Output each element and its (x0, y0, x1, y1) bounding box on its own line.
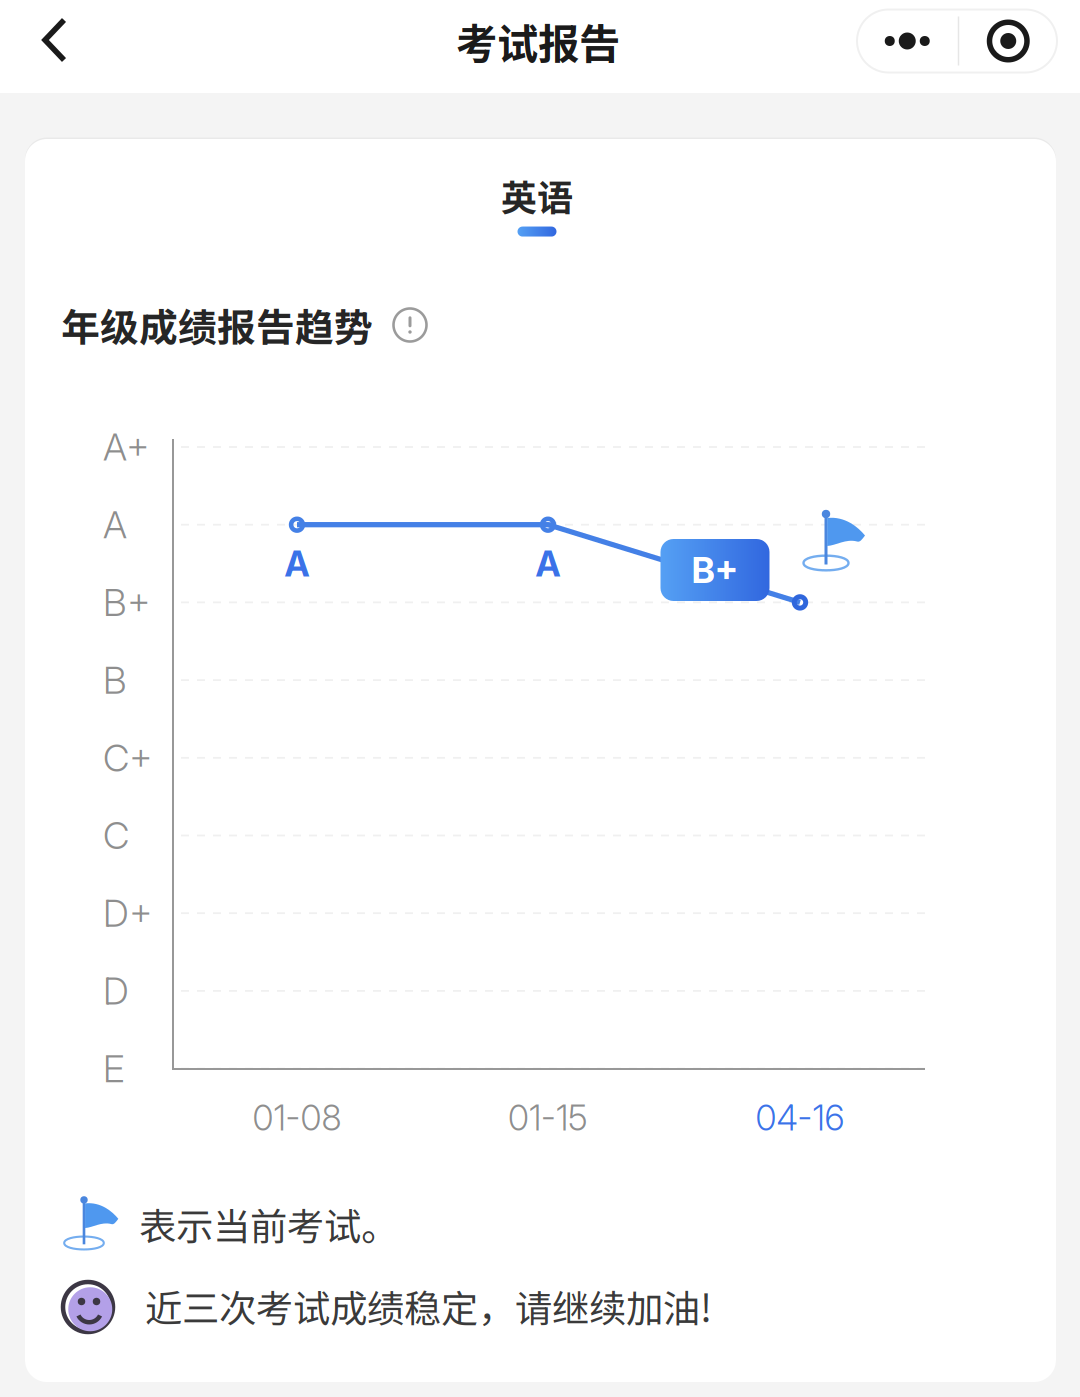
button[interactable]: Info (391, 306, 429, 344)
staticText: A (284, 543, 309, 585)
staticText: B (103, 657, 127, 703)
staticText: 年级成绩报告趋势 (61, 297, 373, 353)
staticText: C (103, 813, 129, 858)
staticText: E (103, 1046, 125, 1091)
staticText: 英语 (501, 169, 573, 221)
staticText: B+ (103, 580, 150, 625)
staticText: 01-08 (252, 1097, 341, 1139)
button[interactable]: Close (959, 9, 1057, 72)
staticText: 考试报告 (456, 11, 620, 71)
staticText: D (103, 968, 129, 1013)
staticText: 近三次考试成绩稳定，请继续加油! (145, 1279, 712, 1333)
button[interactable]: More (857, 9, 958, 72)
staticText: C+ (103, 735, 152, 780)
staticText: A (103, 502, 127, 547)
button[interactable]: Back (0, 0, 106, 93)
staticText: B+ (691, 548, 738, 592)
staticText: A+ (103, 424, 149, 470)
staticText: 04-16 (755, 1097, 844, 1139)
button[interactable]: 英语 (427, 148, 647, 258)
staticText: 01-15 (508, 1097, 588, 1139)
staticText: A (535, 543, 560, 585)
staticText: D+ (103, 891, 152, 936)
staticText: 表示当前考试。 (139, 1197, 398, 1251)
